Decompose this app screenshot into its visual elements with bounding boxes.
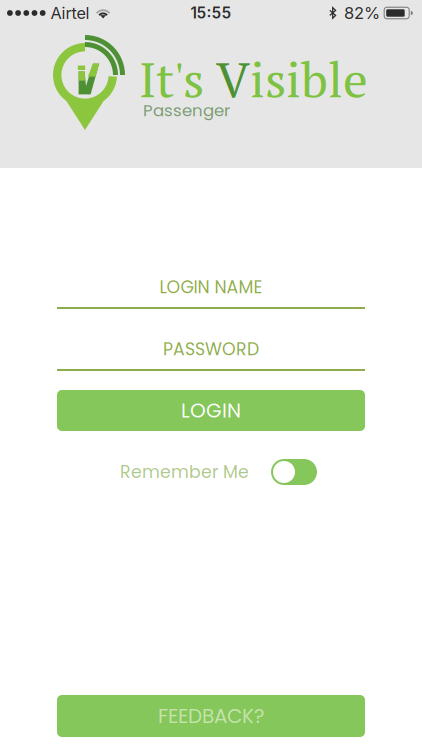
staticText: It's bbox=[139, 46, 216, 111]
staticText: isible bbox=[250, 46, 368, 111]
staticText: LOGIN bbox=[181, 396, 241, 424]
staticText: 15:55 bbox=[190, 4, 231, 22]
staticText: 82% bbox=[344, 3, 380, 23]
staticText: Remember Me bbox=[120, 460, 249, 484]
staticText: Airtel bbox=[51, 3, 90, 23]
button[interactable]: Remember Me toggle bbox=[271, 459, 317, 485]
staticText: Passenger bbox=[143, 99, 230, 122]
button[interactable]: FEEDBACK? bbox=[57, 695, 365, 737]
staticText: V bbox=[216, 46, 250, 111]
button[interactable]: LOGIN bbox=[57, 390, 365, 431]
staticText: LOGIN NAME bbox=[159, 275, 262, 299]
staticText: PASSWORD bbox=[163, 337, 259, 361]
staticText: FEEDBACK? bbox=[158, 702, 264, 730]
